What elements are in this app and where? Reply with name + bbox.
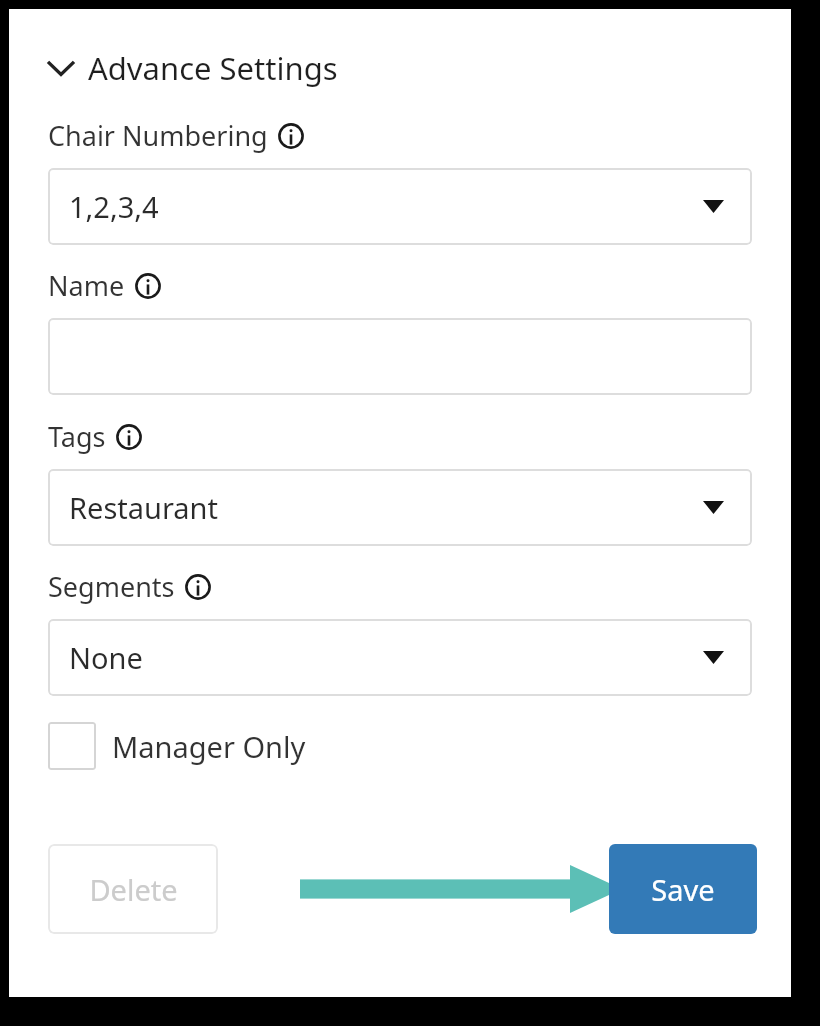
button[interactable]: Segments bbox=[48, 619, 752, 696]
button[interactable]: Delete bbox=[48, 844, 218, 934]
staticText: Delete bbox=[89, 870, 178, 909]
staticText: None bbox=[69, 638, 143, 677]
staticText: Save bbox=[651, 870, 715, 909]
staticText: Restaurant bbox=[69, 488, 219, 527]
staticText: Manager Only bbox=[112, 727, 306, 766]
staticText: 1,2,3,4 bbox=[69, 187, 159, 226]
button[interactable]: Segments info bbox=[185, 574, 211, 600]
button[interactable]: Save bbox=[609, 844, 757, 934]
staticText: Tags bbox=[48, 418, 106, 455]
button[interactable]: Tags info bbox=[116, 424, 142, 450]
staticText: Advance Settings bbox=[88, 47, 338, 89]
staticText: Chair Numbering bbox=[48, 117, 268, 154]
button[interactable]: Chair numbering info bbox=[278, 123, 304, 149]
button[interactable]: Name input bbox=[48, 318, 752, 395]
button[interactable]: Name info bbox=[135, 273, 161, 299]
button[interactable]: Tags bbox=[48, 469, 752, 546]
button[interactable]: Manager Only bbox=[48, 722, 306, 770]
button[interactable]: Chair numbering bbox=[48, 168, 752, 245]
staticText: Name bbox=[48, 267, 125, 304]
button[interactable]: Advance Settings bbox=[48, 47, 338, 89]
staticText: Segments bbox=[48, 568, 175, 605]
